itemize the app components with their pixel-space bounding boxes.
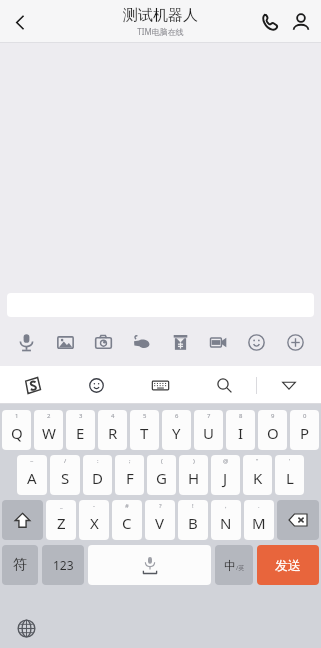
- button[interactable]: 0: [290, 410, 319, 450]
- staticText: 发送: [275, 557, 301, 573]
- staticText: #: [125, 502, 129, 510]
- button[interactable]: 8: [226, 410, 255, 450]
- button[interactable]: @: [211, 455, 240, 495]
- staticText: 4: [111, 412, 115, 420]
- staticText: 3: [79, 412, 83, 420]
- button[interactable]: ': [275, 455, 304, 495]
- button[interactable]: 6: [162, 410, 191, 450]
- staticText: Z: [57, 513, 66, 533]
- button[interactable]: Chinese English toggle: [215, 545, 253, 585]
- button[interactable]: 4: [98, 410, 127, 450]
- staticText: S: [61, 468, 70, 488]
- staticText: J: [223, 468, 228, 488]
- staticText: M: [252, 513, 266, 533]
- staticText: :: [97, 457, 99, 465]
- staticText: 0: [303, 412, 307, 420]
- button[interactable]: 3: [66, 410, 95, 450]
- button[interactable]: Hide keyboard: [257, 366, 321, 404]
- button[interactable]: Photo: [50, 327, 80, 357]
- button[interactable]: Poke: [126, 327, 156, 357]
- staticText: 中: [224, 558, 236, 573]
- staticText: T: [140, 423, 149, 443]
- staticText: _: [60, 502, 63, 510]
- staticText: 符: [13, 556, 27, 574]
- staticText: O: [267, 423, 279, 443]
- staticText: N: [220, 513, 232, 533]
- button[interactable]: #: [112, 500, 142, 540]
- staticText: E: [76, 423, 85, 443]
- button[interactable]: !: [178, 500, 208, 540]
- button[interactable]: Sogou input: [0, 366, 64, 404]
- button[interactable]: ;: [115, 455, 144, 495]
- staticText: 8: [239, 412, 243, 420]
- staticText: H: [188, 468, 200, 488]
- staticText: ~: [30, 457, 34, 465]
- button[interactable]: Profile: [285, 6, 316, 37]
- button[interactable]: Emoji: [64, 366, 128, 404]
- button[interactable]: Backspace: [277, 500, 319, 540]
- button[interactable]: 1: [2, 410, 31, 450]
- staticText: 123: [53, 557, 74, 573]
- button[interactable]: Call: [254, 6, 285, 37]
- staticText: A: [27, 468, 37, 488]
- button[interactable]: GIF: [203, 327, 233, 357]
- staticText: @: [223, 457, 229, 465]
- button[interactable]: More: [280, 327, 310, 357]
- button[interactable]: ,: [211, 500, 241, 540]
- button[interactable]: -: [79, 500, 109, 540]
- button[interactable]: ": [243, 455, 272, 495]
- staticText: X: [90, 513, 99, 533]
- button[interactable]: 7: [194, 410, 223, 450]
- button[interactable]: ): [179, 455, 208, 495]
- button[interactable]: Back: [2, 4, 38, 40]
- staticText: 6: [175, 412, 179, 420]
- staticText: Q: [11, 423, 23, 443]
- button[interactable]: Voice message: [11, 327, 41, 357]
- staticText: 测试机器人: [123, 6, 198, 25]
- staticText: TIM电脑在线: [137, 26, 184, 37]
- staticText: ": [256, 457, 259, 465]
- button[interactable]: _: [46, 500, 76, 540]
- button[interactable]: .: [244, 500, 274, 540]
- staticText: ?: [159, 502, 162, 510]
- button[interactable]: 9: [258, 410, 287, 450]
- staticText: 1: [15, 412, 19, 420]
- staticText: D: [92, 468, 103, 488]
- staticText: /英: [236, 564, 245, 572]
- button[interactable]: (: [147, 455, 176, 495]
- button[interactable]: Shift: [2, 500, 43, 540]
- button[interactable]: :: [83, 455, 112, 495]
- button[interactable]: Emoji: [241, 327, 271, 357]
- staticText: -: [93, 502, 95, 510]
- staticText: !: [192, 502, 194, 510]
- button[interactable]: Search: [192, 366, 256, 404]
- staticText: R: [108, 423, 118, 443]
- staticText: 2: [47, 412, 51, 420]
- button[interactable]: 发送: [257, 545, 319, 585]
- staticText: 9: [271, 412, 275, 420]
- button[interactable]: Red packet: [165, 327, 195, 357]
- staticText: W: [42, 423, 56, 443]
- staticText: ): [193, 457, 195, 465]
- staticText: V: [155, 513, 165, 533]
- button[interactable]: Switch language: [13, 615, 39, 641]
- staticText: I: [238, 423, 244, 443]
- button[interactable]: ~: [17, 455, 47, 495]
- staticText: G: [156, 468, 167, 488]
- staticText: /: [64, 457, 67, 465]
- staticText: F: [126, 468, 134, 488]
- button[interactable]: 5: [130, 410, 159, 450]
- button[interactable]: 2: [34, 410, 63, 450]
- button[interactable]: /: [50, 455, 80, 495]
- staticText: ;: [129, 457, 131, 465]
- button[interactable]: 123: [42, 545, 84, 585]
- button[interactable]: ?: [145, 500, 175, 540]
- staticText: C: [122, 513, 132, 533]
- button[interactable]: 符: [2, 545, 38, 585]
- staticText: K: [253, 468, 263, 488]
- button[interactable]: Camera: [88, 327, 118, 357]
- staticText: B: [188, 513, 198, 533]
- button[interactable]: Keyboard: [128, 366, 192, 404]
- button[interactable]: Space: [88, 545, 211, 585]
